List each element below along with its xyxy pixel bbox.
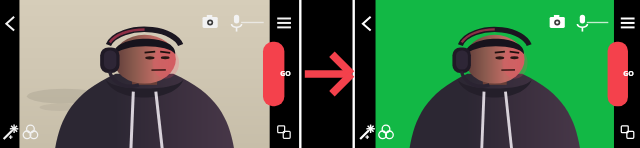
- button[interactable]: Color filters: [378, 125, 398, 145]
- button[interactable]: Microphone level: [594, 4, 616, 26]
- button[interactable]: GO: [277, 58, 294, 90]
- button[interactable]: Capture photo: [572, 4, 594, 26]
- staticText: GO: [623, 69, 634, 79]
- button[interactable]: GO: [620, 58, 637, 90]
- staticText: GO: [280, 69, 291, 79]
- button[interactable]: Menu: [273, 4, 295, 26]
- button[interactable]: Microphone level: [251, 4, 273, 26]
- button[interactable]: Effects: [1, 125, 21, 145]
- button[interactable]: Effects: [358, 125, 378, 145]
- button[interactable]: Back: [359, 4, 381, 26]
- button[interactable]: Layers: [276, 125, 296, 145]
- button[interactable]: Capture photo: [229, 4, 251, 26]
- button[interactable]: Back: [2, 4, 24, 26]
- button[interactable]: Color filters: [21, 125, 41, 145]
- button[interactable]: Menu: [616, 4, 638, 26]
- button[interactable]: Layers: [619, 125, 639, 145]
